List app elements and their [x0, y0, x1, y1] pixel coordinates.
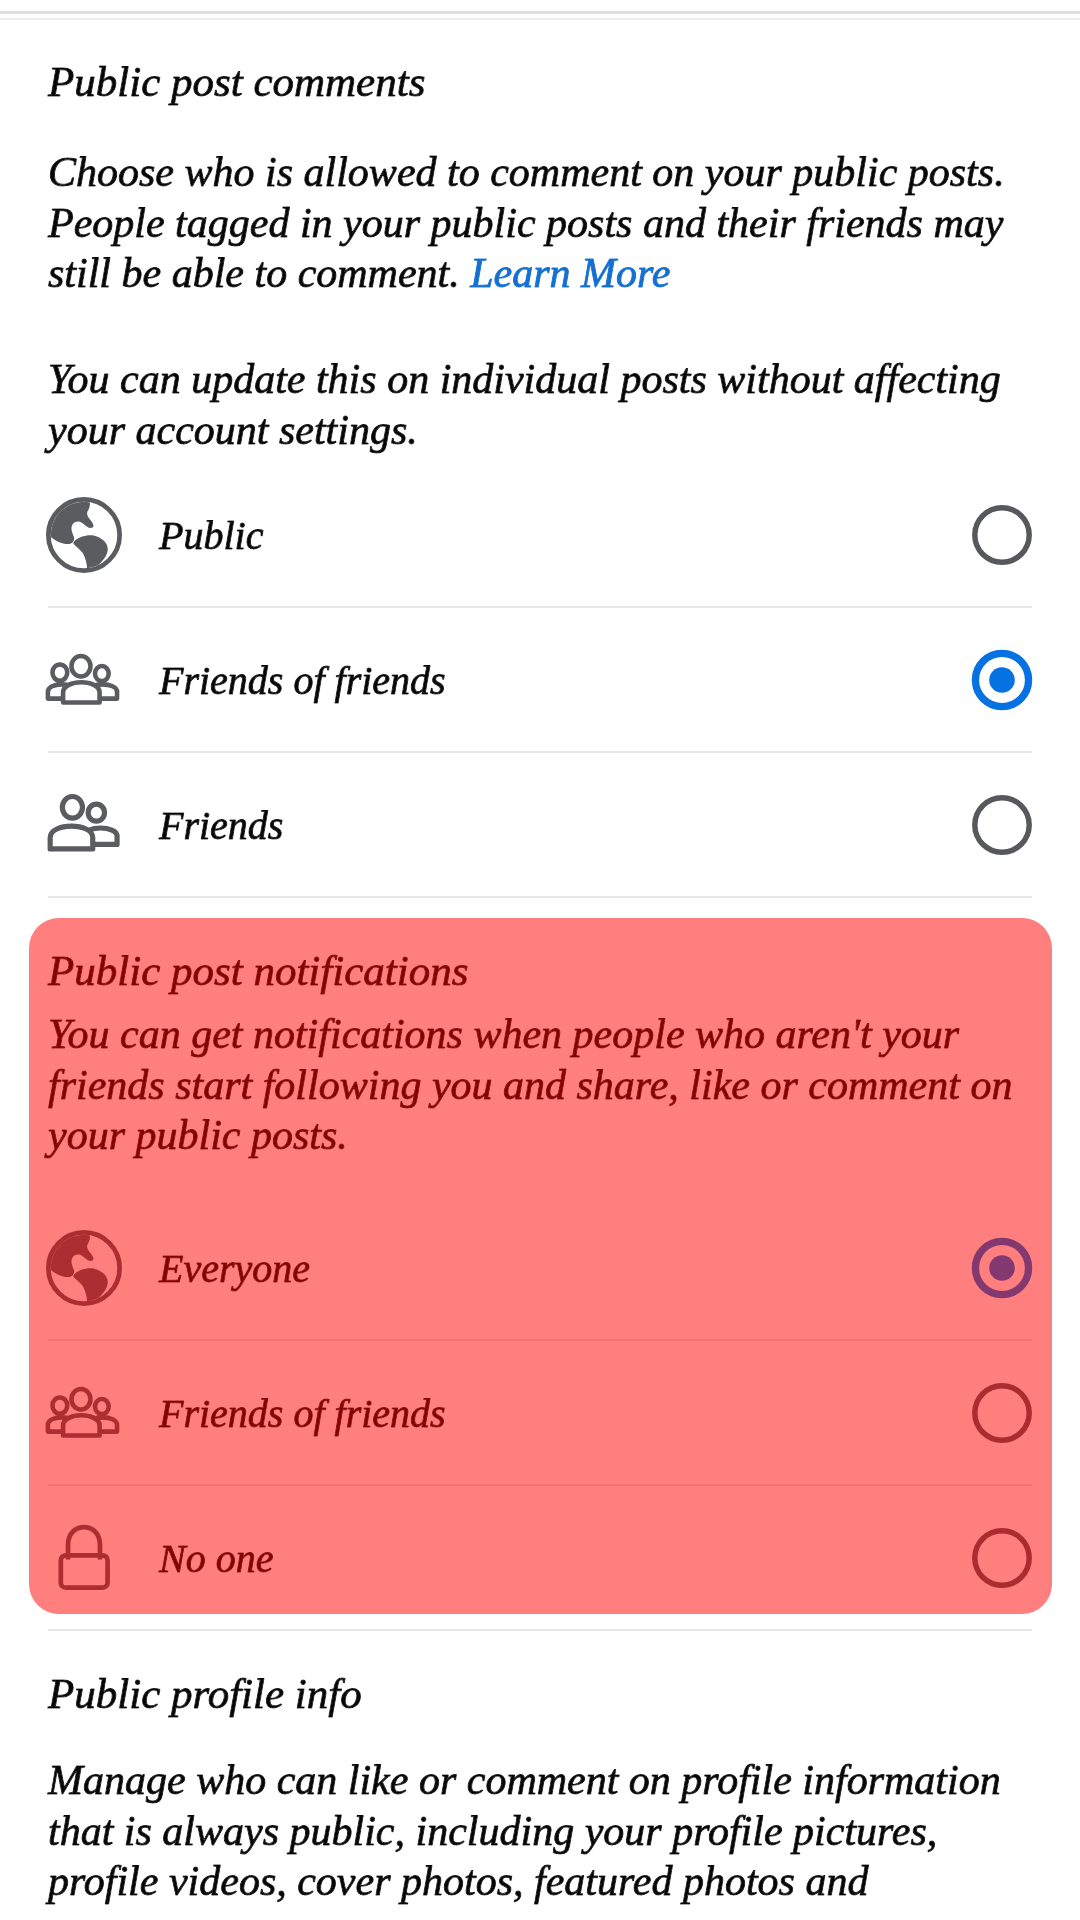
button[interactable]: Friends of friends — [0, 608, 1080, 751]
staticText: Choose who is allowed to comment on your… — [48, 149, 1044, 296]
button[interactable]: Friends of friends — [0, 1341, 1080, 1484]
staticText: Public profile info — [48, 1670, 362, 1718]
button[interactable]: No one — [0, 1486, 1080, 1629]
staticText: You can update this on individual posts … — [48, 356, 1044, 453]
staticText: Public — [159, 513, 264, 557]
staticText: Everyone — [159, 1246, 311, 1290]
staticText: You can update this on individual posts … — [48, 356, 1044, 453]
staticText: Public post notifications — [48, 947, 469, 995]
staticText: Friends — [159, 803, 284, 847]
staticText: Public post comments — [48, 58, 426, 106]
button[interactable]: Public — [0, 463, 1080, 606]
staticText: Choose who is allowed to comment on your… — [48, 149, 1044, 296]
staticText: Friends of friends — [159, 1391, 446, 1435]
button[interactable]: Friends — [0, 753, 1080, 896]
staticText: Friends of friends — [159, 658, 446, 702]
staticText: Friends of friends — [159, 658, 446, 702]
staticText: Public profile info — [48, 1670, 362, 1718]
staticText: You can get notifications when people wh… — [48, 1011, 1044, 1158]
staticText: No one — [159, 1536, 274, 1580]
staticText: Manage who can like or comment on profil… — [48, 1757, 1044, 1904]
staticText: Friends — [159, 803, 284, 847]
staticText: You can get notifications when people wh… — [48, 1011, 1044, 1158]
staticText: Public post comments — [48, 58, 426, 106]
staticText: Friends of friends — [159, 1391, 446, 1435]
staticText: Manage who can like or comment on profil… — [48, 1757, 1044, 1904]
staticText: Public — [159, 513, 264, 557]
staticText: No one — [159, 1536, 274, 1580]
staticText: Public post notifications — [48, 947, 469, 995]
staticText: Everyone — [159, 1246, 311, 1290]
button[interactable]: Everyone — [0, 1196, 1080, 1339]
